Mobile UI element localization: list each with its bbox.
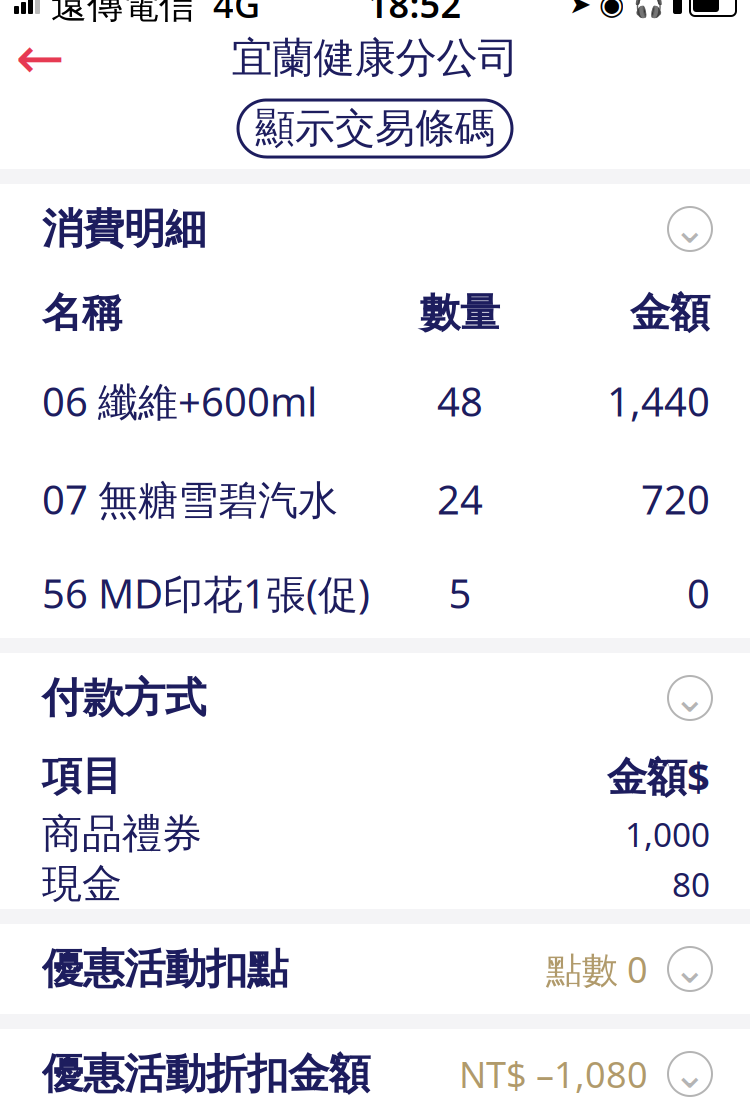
button[interactable]: 消費明細 [0, 184, 750, 274]
staticText: 金額$ [607, 749, 710, 802]
staticText: 消費明細 [42, 204, 206, 254]
staticText: ➤ [569, 0, 591, 19]
staticText: 點數 0 [546, 945, 648, 993]
staticText: 優惠活動折扣金額 [42, 1049, 370, 1099]
button[interactable]: 優惠活動扣點 [0, 924, 750, 1014]
staticText: ← [15, 25, 64, 91]
staticText: 遠傳電信 4G [40, 0, 260, 28]
staticText: 🎧 [633, 0, 665, 18]
staticText: 項目 [42, 751, 122, 800]
staticText: ⌄ [673, 675, 707, 721]
button[interactable]: 優惠活動折扣金額 [0, 1029, 750, 1109]
staticText: 720 [641, 472, 710, 525]
staticText: 名稱 [42, 288, 122, 337]
staticText: 商品禮券 [42, 809, 202, 858]
staticText: 48 [437, 374, 483, 427]
button[interactable]: Collapse section [658, 197, 722, 261]
staticText: 付款方式 [42, 673, 206, 723]
button[interactable]: Collapse section [658, 937, 722, 1001]
button[interactable]: 顯示交易條碼 [238, 100, 512, 157]
staticText: 07 無糖雪碧汽水 [42, 472, 338, 525]
staticText: 18:52 [367, 0, 461, 28]
staticText: NT$ –1,080 [459, 1050, 648, 1098]
staticText: ⌄ [673, 206, 707, 252]
staticText: 顯示交易條碼 [255, 104, 495, 153]
staticText: 0 [687, 566, 710, 619]
staticText: 金額 [630, 288, 710, 337]
staticText: 1,440 [607, 374, 710, 427]
staticText: 56 MD印花1張(促) [42, 566, 370, 620]
staticText: 優惠活動扣點 [42, 944, 288, 994]
staticText: 24 [437, 472, 483, 525]
staticText: 80 [672, 862, 710, 906]
staticText: 數量 [420, 288, 500, 337]
button[interactable]: 付款方式 [0, 653, 750, 743]
staticText: ◉ [599, 0, 625, 21]
staticText: 1,000 [625, 812, 710, 856]
staticText: 宜蘭健康分公司 [231, 33, 518, 83]
staticText: ⌄ [673, 1051, 707, 1097]
button[interactable]: Back [0, 28, 80, 88]
button[interactable]: Collapse section [658, 1042, 722, 1106]
staticText: 5 [448, 566, 471, 619]
staticText: 06 纖維+600ml [42, 374, 317, 427]
staticText: 現金 [42, 859, 122, 908]
staticText: ⌄ [673, 946, 707, 992]
button[interactable]: Collapse section [658, 666, 722, 730]
